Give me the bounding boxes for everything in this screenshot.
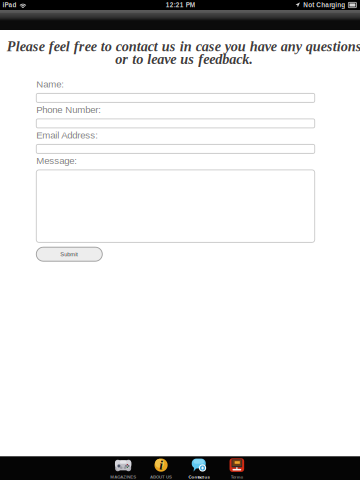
button[interactable]: Submit (36, 247, 102, 261)
staticText: Terms (231, 474, 243, 479)
staticText: 12:21 PM (166, 1, 195, 8)
staticText: Name: (36, 79, 64, 89)
staticText: ABOUT US (150, 474, 172, 479)
button[interactable]: MAGAZINES (104, 456, 142, 480)
staticText: Phone Number: (36, 104, 101, 115)
button[interactable]: Contact us (180, 456, 218, 480)
staticText: Not Charging (303, 1, 345, 8)
staticText: Please feel free to contact us in case y… (6, 39, 360, 67)
staticText: MAGAZINES (110, 474, 136, 479)
button[interactable]: i (142, 456, 180, 480)
staticText: Email Address: (36, 130, 98, 140)
button[interactable]: Terms (218, 456, 256, 480)
staticText: Contact us (188, 474, 209, 479)
staticText: Message: (36, 155, 77, 166)
staticText: Submit (60, 251, 78, 257)
staticText: i (159, 457, 163, 472)
staticText: iPad (2, 1, 16, 8)
